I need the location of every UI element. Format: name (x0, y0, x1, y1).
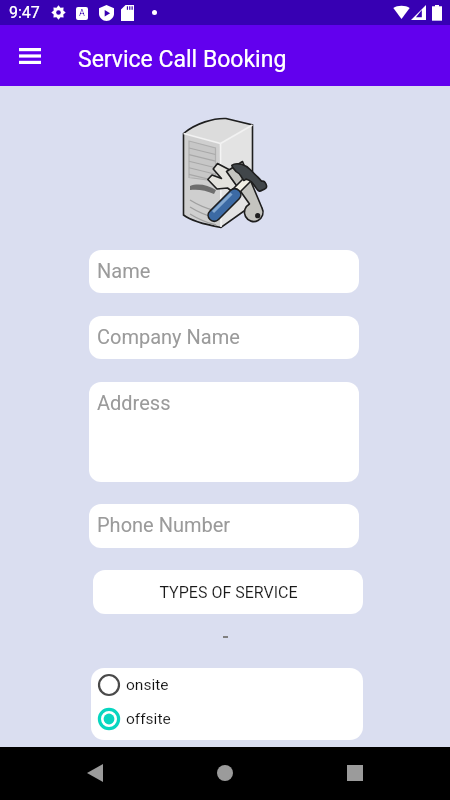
button[interactable]: Recent apps (335, 753, 375, 793)
button[interactable]: Address (89, 382, 359, 482)
button[interactable]: Back (75, 753, 115, 793)
button[interactable]: Open navigation menu (10, 37, 50, 75)
button[interactable]: Home (205, 753, 245, 793)
button[interactable]: TYPES OF SERVICE (93, 570, 363, 614)
staticText: 9:47 (9, 3, 40, 22)
staticText: Name (97, 259, 151, 282)
staticText: offsite (126, 710, 171, 728)
staticText: Phone Number (97, 513, 231, 536)
staticText: onsite (126, 676, 169, 694)
staticText: Company Name (97, 325, 240, 348)
button[interactable]: onsite (91, 668, 363, 702)
button[interactable]: Company Name (89, 316, 359, 359)
staticText: TYPES OF SERVICE (159, 583, 298, 602)
button[interactable]: Phone Number (89, 504, 359, 548)
staticText: Address (97, 391, 171, 414)
button[interactable]: Name (89, 250, 359, 293)
staticText: A (79, 8, 85, 19)
staticText: Service Call Booking (78, 46, 287, 73)
button[interactable]: offsite (91, 702, 363, 736)
